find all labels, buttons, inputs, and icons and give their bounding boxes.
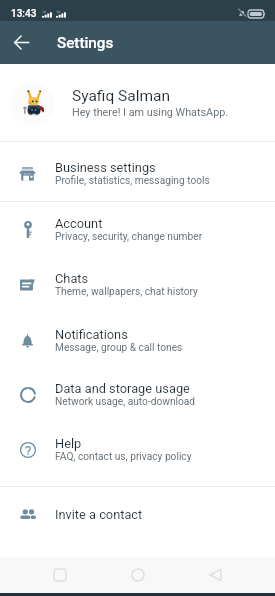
button[interactable]: Account: [0, 202, 275, 256]
staticText: Chats: [55, 271, 89, 286]
button[interactable]: Back: [0, 21, 43, 64]
staticText: Help: [55, 436, 82, 451]
button[interactable]: Home: [120, 557, 156, 593]
staticText: Data and storage usage: [55, 381, 190, 396]
button[interactable]: Data and storage usage: [0, 367, 275, 422]
button[interactable]: Invite a contact: [0, 487, 275, 542]
button[interactable]: Syafiq Salman: [0, 64, 275, 141]
staticText: FAQ, contact us, privacy policy: [55, 451, 192, 463]
staticText: Network usage, auto-download: [55, 396, 196, 408]
button[interactable]: Notifications: [0, 313, 275, 367]
staticText: Message, group & call tones: [55, 342, 183, 354]
staticText: Theme, wallpapers, chat history: [55, 286, 198, 298]
button[interactable]: Recent apps: [42, 557, 78, 593]
button[interactable]: Chats: [0, 256, 275, 313]
staticText: Profile, statistics, messaging tools: [55, 175, 210, 187]
button[interactable]: Back: [197, 557, 233, 593]
staticText: Settings: [57, 34, 114, 52]
staticText: Privacy, security, change number: [55, 231, 203, 243]
staticText: Hey there! I am using WhatsApp.: [72, 106, 229, 119]
staticText: Account: [55, 216, 103, 231]
staticText: Notifications: [55, 327, 128, 342]
staticText: Business settings: [55, 160, 156, 175]
staticText: Invite a contact: [55, 507, 143, 522]
staticText: Syafiq Salman: [72, 87, 171, 105]
staticText: 13:43: [11, 8, 37, 20]
button[interactable]: Help: [0, 422, 275, 477]
button[interactable]: Business settings: [0, 146, 275, 201]
